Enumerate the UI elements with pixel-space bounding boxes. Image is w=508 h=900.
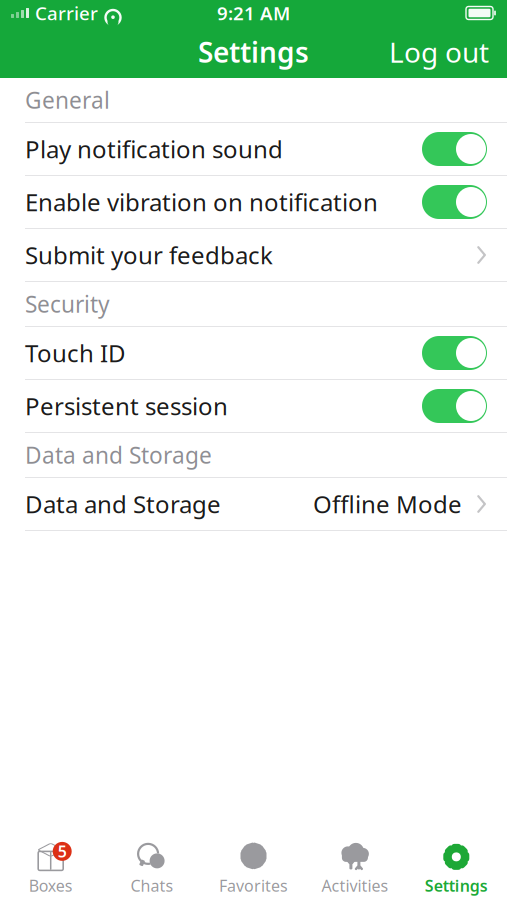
staticText: Activities xyxy=(321,875,388,896)
staticText: Submit your feedback xyxy=(25,239,273,271)
staticText: Carrier xyxy=(35,1,98,25)
staticText: Settings xyxy=(425,875,488,896)
button[interactable]: Settings xyxy=(406,840,507,898)
staticText: Offline Mode xyxy=(313,488,462,520)
staticText: Settings xyxy=(198,33,309,71)
staticText: Security xyxy=(25,289,110,319)
button[interactable]: Chats xyxy=(101,840,203,898)
button[interactable]: Submit your feedback xyxy=(0,229,507,281)
button[interactable]: Play notification sound xyxy=(0,123,507,175)
button[interactable]: Persistent session xyxy=(0,380,507,432)
staticText: Data and Storage xyxy=(25,440,212,470)
staticText: General xyxy=(25,85,110,115)
button[interactable]: Data and Storage xyxy=(0,478,507,530)
staticText: Boxes xyxy=(29,875,73,896)
staticText: Play notification sound xyxy=(25,133,283,165)
staticText: Data and Storage xyxy=(25,488,221,520)
staticText: 9:21 AM xyxy=(217,1,290,25)
staticText: Enable vibration on notification xyxy=(25,186,378,218)
staticText: Log out xyxy=(389,33,489,71)
button[interactable]: Enable vibration on notification xyxy=(0,176,507,228)
button[interactable]: 5 xyxy=(0,840,101,898)
staticText: 5 xyxy=(58,841,67,862)
staticText: Persistent session xyxy=(25,390,228,422)
staticText: Touch ID xyxy=(25,337,126,369)
button[interactable]: Touch ID xyxy=(0,327,507,379)
button[interactable]: Favorites xyxy=(203,840,304,898)
staticText: Chats xyxy=(131,875,174,896)
staticText: Favorites xyxy=(219,875,288,896)
button[interactable]: Log out xyxy=(375,25,503,79)
button[interactable]: Activities xyxy=(304,840,406,898)
